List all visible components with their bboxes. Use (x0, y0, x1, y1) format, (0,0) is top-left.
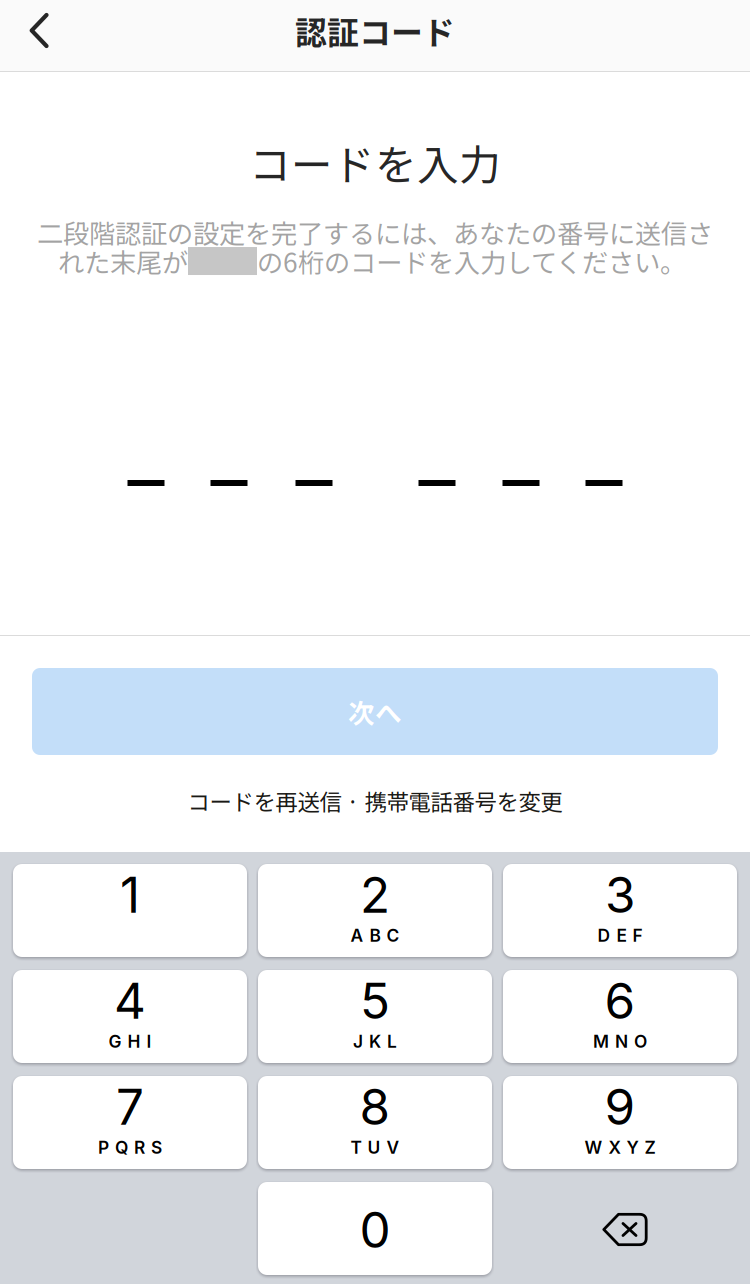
button[interactable]: 6 (503, 970, 737, 1063)
button[interactable]: 0 (258, 1182, 492, 1275)
staticText: の6桁のコードを入力してください。 (257, 242, 686, 280)
staticText: コードを入力 (249, 132, 501, 192)
staticText: 2 (360, 865, 390, 925)
button[interactable]: 9 (503, 1076, 737, 1169)
staticText: れた末尾が (58, 242, 188, 280)
staticText: 9 (604, 1077, 635, 1137)
staticText: 3 (605, 865, 635, 925)
staticText: 認証コード (295, 7, 455, 53)
button[interactable]: 2 (258, 864, 492, 957)
staticText: 0 (359, 1200, 390, 1260)
button[interactable]: コードを再送信 · 携帯電話番号を変更 (187, 785, 562, 817)
button[interactable]: 5 (258, 970, 492, 1063)
button[interactable]: Delete (503, 1182, 737, 1275)
button[interactable]: Back (0, 0, 78, 60)
button[interactable]: 8 (258, 1076, 492, 1169)
button[interactable]: 1 (13, 864, 247, 957)
button[interactable]: 7 (13, 1076, 247, 1169)
staticText: 5 (360, 971, 390, 1031)
staticText: WXYZ (584, 1137, 655, 1158)
staticText: MNO (593, 1031, 647, 1052)
button[interactable]: 4 (13, 970, 247, 1063)
staticText: GHI (108, 1031, 151, 1052)
staticText: 7 (116, 1077, 144, 1137)
staticText: DEF (597, 925, 642, 946)
staticText: ABC (350, 925, 399, 946)
staticText: コードを再送信 · 携帯電話番号を変更 (187, 785, 562, 817)
staticText: PQRS (98, 1137, 162, 1158)
staticText: TUV (350, 1137, 399, 1158)
staticText: 二段階認証の設定を完了するには、あなたの番号に送信さ (37, 213, 713, 251)
staticText: 1 (120, 865, 140, 925)
staticText: 4 (114, 971, 146, 1031)
staticText: 6 (604, 971, 635, 1031)
button[interactable]: 3 (503, 864, 737, 957)
staticText: 次へ (348, 692, 402, 731)
button[interactable]: 次へ (32, 668, 718, 755)
staticText: 8 (359, 1077, 390, 1137)
staticText: JKL (353, 1031, 397, 1052)
